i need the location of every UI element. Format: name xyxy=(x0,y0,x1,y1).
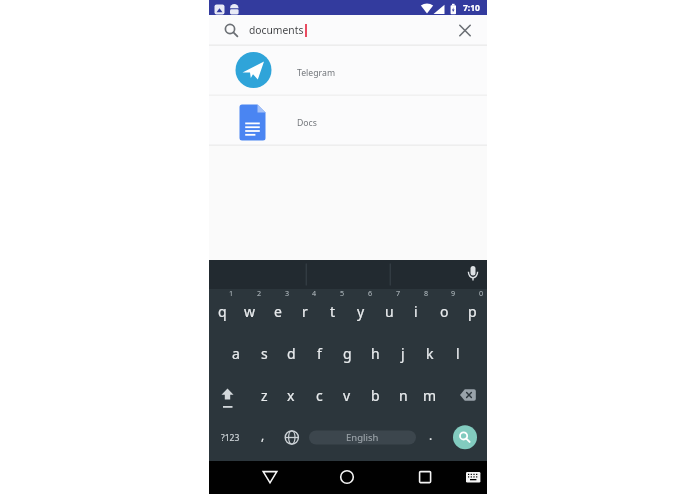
staticText: q xyxy=(218,302,227,321)
staticText: ?123 xyxy=(221,432,240,444)
staticText: 7:10 xyxy=(463,2,480,14)
staticText: . xyxy=(429,427,433,443)
button[interactable]: t xyxy=(319,300,347,322)
staticText: 3 xyxy=(285,288,290,298)
button[interactable]: j xyxy=(389,342,417,364)
button[interactable]: ?123 xyxy=(216,427,244,449)
staticText: documents xyxy=(249,23,304,37)
button[interactable] xyxy=(411,463,439,491)
button[interactable] xyxy=(280,426,303,448)
button[interactable]: b xyxy=(361,384,389,406)
staticText: k xyxy=(426,344,434,363)
staticText: x xyxy=(287,386,295,405)
staticText: English xyxy=(346,431,379,444)
staticText: 9 xyxy=(451,288,456,298)
button[interactable]: r xyxy=(291,300,319,322)
staticText: 2 xyxy=(257,288,262,298)
button[interactable]: a xyxy=(222,342,250,364)
staticText: n xyxy=(399,386,408,405)
staticText: 5 xyxy=(340,288,345,298)
button[interactable]: 5 xyxy=(336,287,348,298)
staticText: 6 xyxy=(368,288,373,298)
staticText: i xyxy=(414,302,418,321)
staticText: t xyxy=(330,302,336,321)
staticText: 7 xyxy=(396,288,401,298)
staticText: c xyxy=(316,386,323,405)
staticText: b xyxy=(371,386,380,405)
button[interactable]: p xyxy=(458,300,486,322)
staticText: j xyxy=(401,344,405,363)
button[interactable]: e xyxy=(264,300,292,322)
button[interactable] xyxy=(463,262,483,286)
staticText: m xyxy=(423,386,437,405)
staticText: Telegram xyxy=(297,67,336,79)
staticText: f xyxy=(317,344,322,363)
button[interactable]: k xyxy=(416,342,444,364)
staticText: 8 xyxy=(424,288,429,298)
staticText: Docs xyxy=(297,117,317,129)
staticText: h xyxy=(371,344,380,363)
button[interactable] xyxy=(215,384,240,407)
staticText: r xyxy=(302,302,308,321)
button[interactable]: q xyxy=(208,300,236,322)
button[interactable] xyxy=(209,15,487,45)
button[interactable]: c xyxy=(305,384,333,406)
button[interactable]: f xyxy=(305,342,333,364)
button[interactable] xyxy=(459,465,487,489)
staticText: y xyxy=(357,302,365,321)
button[interactable]: h xyxy=(361,342,389,364)
button[interactable] xyxy=(455,384,481,406)
staticText: 4 xyxy=(312,288,317,298)
button[interactable]: i xyxy=(402,300,430,322)
staticText: 0 xyxy=(479,288,484,298)
button[interactable]: 1 xyxy=(225,287,237,298)
button[interactable]: z xyxy=(250,384,278,406)
button[interactable]: m xyxy=(416,384,444,406)
staticText: p xyxy=(468,302,477,321)
button[interactable] xyxy=(453,425,477,449)
button[interactable]: 8 xyxy=(420,287,432,298)
staticText: w xyxy=(244,302,256,321)
button[interactable]: o xyxy=(430,300,458,322)
button[interactable]: 4 xyxy=(308,287,320,298)
button[interactable]: x xyxy=(277,384,305,406)
button[interactable]: 6 xyxy=(364,287,376,298)
staticText: a xyxy=(232,344,240,363)
button[interactable] xyxy=(333,463,361,491)
button[interactable] xyxy=(209,45,487,95)
staticText: , xyxy=(261,427,265,443)
staticText: e xyxy=(274,302,282,321)
button[interactable]: d xyxy=(277,342,305,364)
staticText: l xyxy=(456,344,460,363)
button[interactable]: n xyxy=(389,384,417,406)
staticText: 1 xyxy=(229,288,234,298)
button[interactable]: g xyxy=(333,342,361,364)
button[interactable] xyxy=(456,21,474,39)
button[interactable]: y xyxy=(347,300,375,322)
staticText: g xyxy=(343,344,352,363)
button[interactable]: s xyxy=(250,342,278,364)
staticText: u xyxy=(385,302,394,321)
button[interactable]: v xyxy=(333,384,361,406)
button[interactable]: u xyxy=(375,300,403,322)
button[interactable]: 7 xyxy=(392,287,404,298)
button[interactable] xyxy=(209,95,487,145)
button[interactable]: w xyxy=(236,300,264,322)
staticText: z xyxy=(261,386,268,405)
button[interactable]: , xyxy=(249,424,277,446)
button[interactable]: 9 xyxy=(447,287,459,298)
button[interactable]: English xyxy=(309,430,416,445)
staticText: v xyxy=(343,386,351,405)
staticText: d xyxy=(287,344,296,363)
button[interactable]: l xyxy=(444,342,472,364)
button[interactable]: 3 xyxy=(281,287,293,298)
button[interactable]: 0 xyxy=(475,287,487,298)
staticText: s xyxy=(261,344,268,363)
staticText: o xyxy=(440,302,449,321)
button[interactable] xyxy=(256,463,284,491)
button[interactable]: . xyxy=(417,424,445,446)
button[interactable]: 2 xyxy=(253,287,265,298)
